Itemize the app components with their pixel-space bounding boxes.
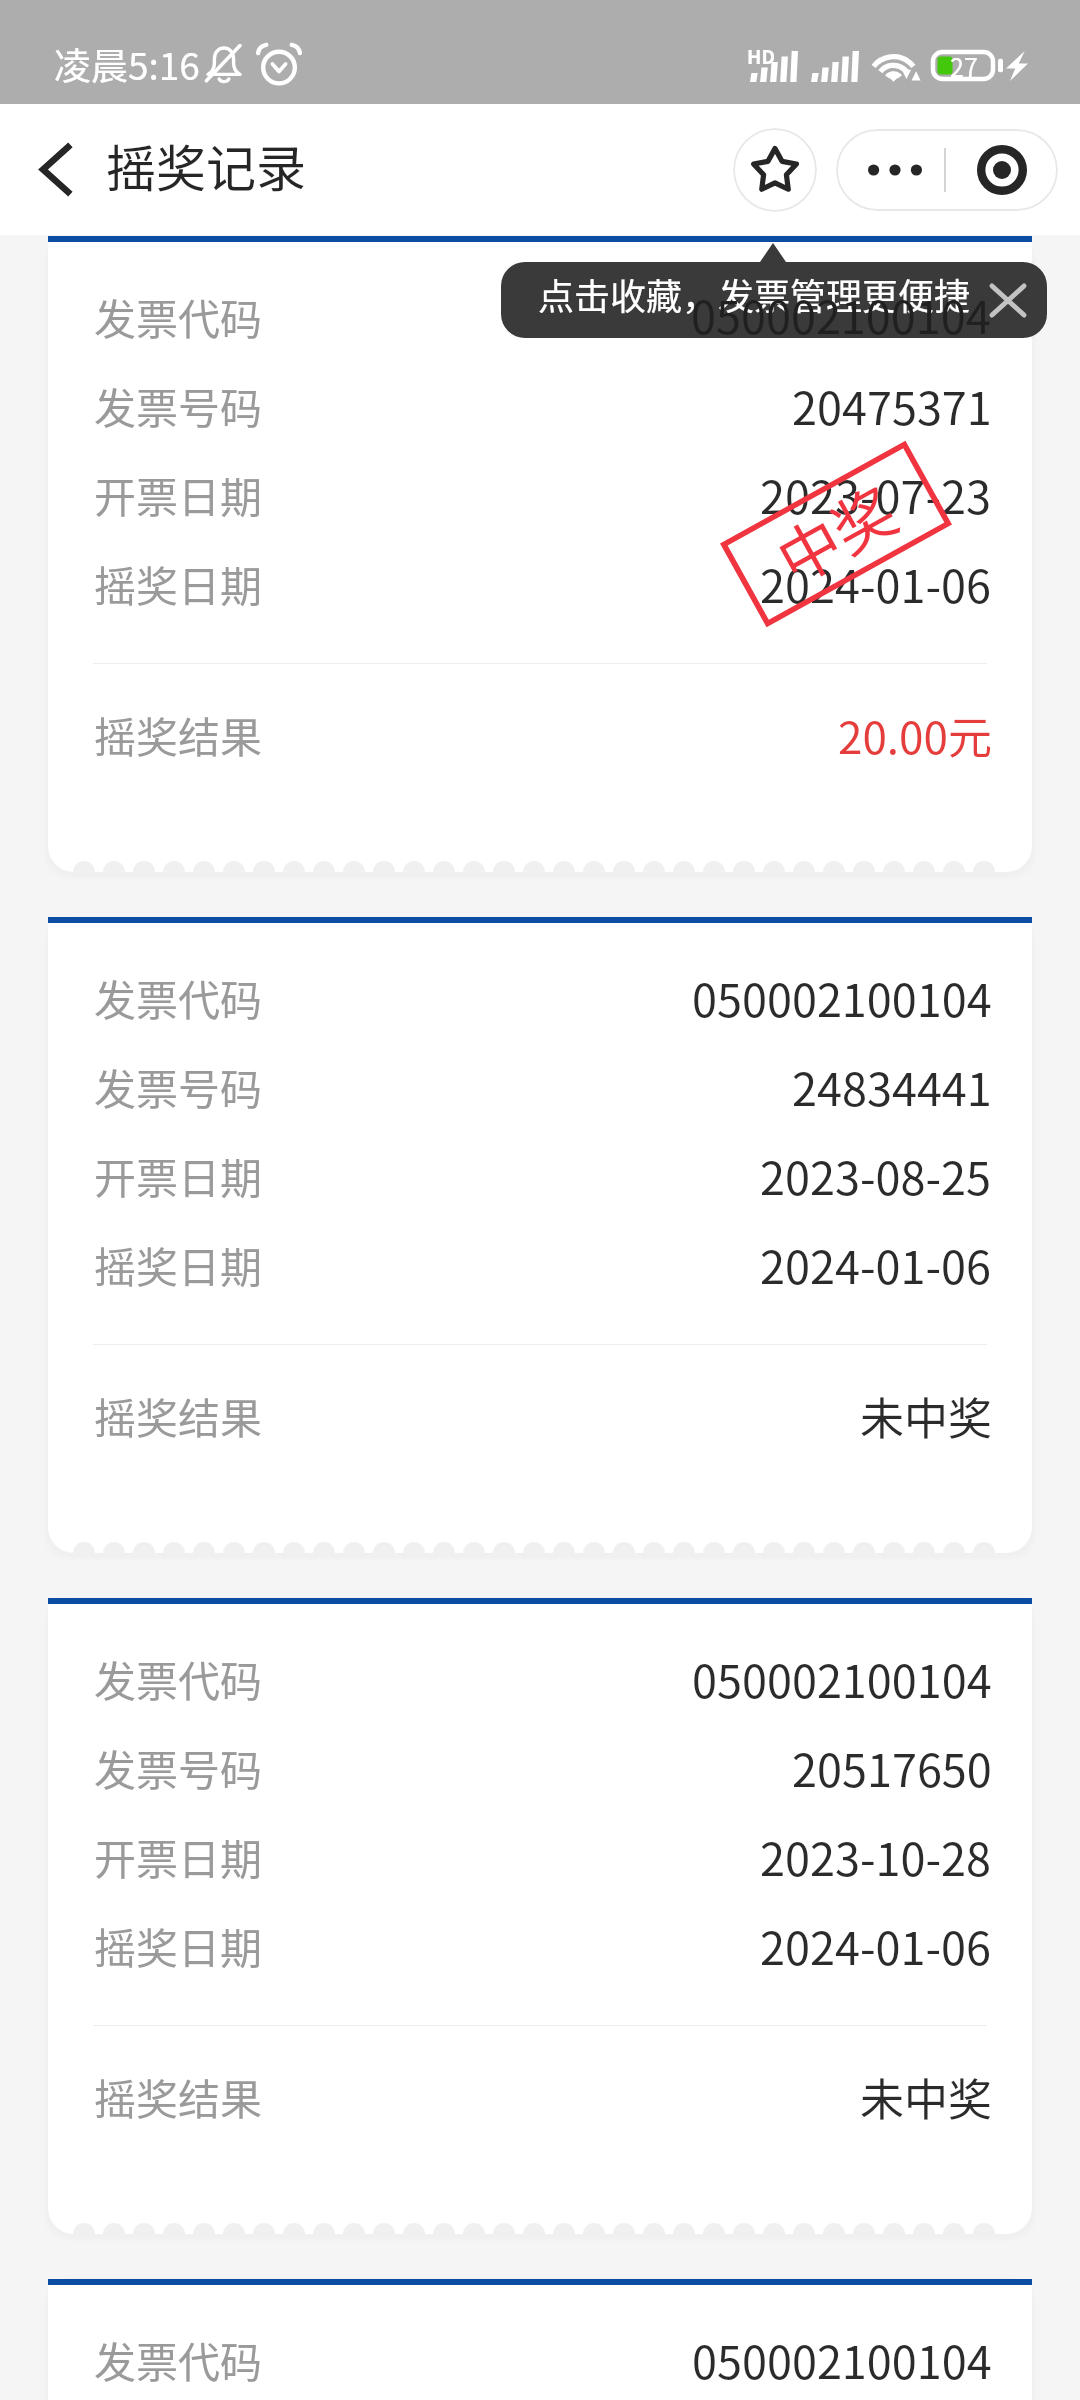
staticText: 2024-01-06 <box>760 1232 992 1297</box>
staticText: 2023-08-25 <box>760 1143 992 1208</box>
staticText: 摇奖日期 <box>94 1915 263 1976</box>
staticText: 20.00元 <box>838 703 992 767</box>
button[interactable]: Favorite <box>733 128 817 212</box>
staticText: 050002100104 <box>691 282 991 347</box>
staticText: 摇奖日期 <box>94 553 263 614</box>
button[interactable]: More options <box>836 129 944 211</box>
staticText: 20517650 <box>792 1735 992 1800</box>
staticText: 2024-01-06 <box>760 551 992 616</box>
staticText: 发票代码 <box>94 286 263 347</box>
staticText: 未中奖 <box>860 1384 992 1448</box>
staticText: 2024-01-06 <box>760 1913 992 1978</box>
staticText: HD <box>747 42 775 70</box>
staticText: 发票代码 <box>94 1648 263 1709</box>
staticText: 24834441 <box>792 1054 992 1119</box>
staticText: 2023-07-23 <box>760 462 992 527</box>
staticText: 2023-10-28 <box>760 1824 992 1889</box>
staticText: 27 <box>950 48 978 79</box>
staticText: 凌晨5:16 <box>54 37 200 91</box>
staticText: 未中奖 <box>860 2065 992 2129</box>
button[interactable]: Close mini program <box>946 129 1058 211</box>
button[interactable]: 发票代码 <box>48 236 1032 872</box>
staticText: 摇奖结果 <box>94 2066 263 2127</box>
staticText: 050002100104 <box>692 284 992 349</box>
staticText: 发票号码 <box>94 1056 263 1117</box>
button[interactable]: 发票代码 <box>48 1598 1032 2234</box>
staticText: 开票日期 <box>94 1145 263 1206</box>
staticText: 开票日期 <box>94 1826 263 1887</box>
staticText: 发票代码 <box>94 967 263 1028</box>
staticText: 050002100104 <box>692 2327 992 2392</box>
staticText: 20475371 <box>792 373 992 438</box>
staticText: 摇奖结果 <box>94 1385 263 1446</box>
button[interactable]: 点击收藏，发票管理更便捷 <box>501 262 1047 338</box>
button[interactable]: 发票代码 <box>48 2279 1032 2400</box>
staticText: 发票号码 <box>94 375 263 436</box>
staticText: 发票号码 <box>94 1737 263 1798</box>
staticText: 050002100104 <box>692 965 992 1030</box>
button[interactable]: Back <box>0 104 108 235</box>
staticText: 中奖 <box>759 462 912 602</box>
button[interactable]: Close tip <box>971 262 1047 338</box>
staticText: 发票代码 <box>94 2329 263 2390</box>
staticText: 摇奖记录 <box>106 129 306 201</box>
staticText: 开票日期 <box>94 464 263 525</box>
button[interactable]: 发票代码 <box>48 917 1032 1553</box>
staticText: 摇奖结果 <box>94 704 263 765</box>
staticText: 摇奖日期 <box>94 1234 263 1295</box>
staticText: 点击收藏，发票管理更便捷 <box>538 268 971 320</box>
staticText: 050002100104 <box>692 1646 992 1711</box>
